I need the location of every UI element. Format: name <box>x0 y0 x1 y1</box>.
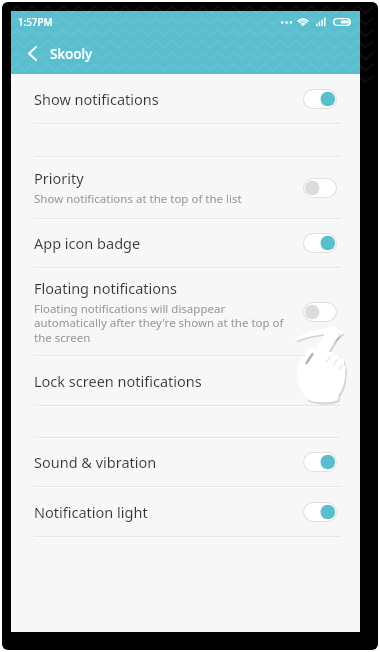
button[interactable]: App icon badge <box>11 219 360 267</box>
staticText: Lock screen notifications <box>34 371 202 391</box>
button[interactable]: Toggle on <box>303 452 337 472</box>
button[interactable]: Lock screen notifications <box>11 356 360 405</box>
staticText: Priority <box>34 168 84 188</box>
staticText: Notification light <box>34 502 148 522</box>
button[interactable]: Back <box>11 33 50 74</box>
staticText: Show notifications <box>34 89 159 109</box>
button[interactable]: Priority <box>11 157 360 218</box>
button[interactable]: Floating notifications <box>11 268 360 355</box>
button[interactable]: Toggle on <box>303 502 337 522</box>
staticText: Show notifications at the top of the lis… <box>34 191 242 207</box>
staticText: App icon badge <box>34 233 141 253</box>
button[interactable]: Notification light <box>11 487 360 536</box>
button[interactable]: Toggle on <box>303 89 337 109</box>
button[interactable]: Sound & vibration <box>11 438 360 486</box>
staticText: 1:57PM <box>18 16 53 29</box>
staticText: Sound & vibration <box>34 452 157 472</box>
button[interactable]: Toggle on <box>303 233 337 253</box>
button[interactable]: Show notifications <box>11 74 360 123</box>
button[interactable]: Toggle off <box>303 302 337 322</box>
staticText: Skooly <box>50 45 93 63</box>
staticText: Floating notifications will disappear au… <box>34 301 291 346</box>
staticText: Floating notifications <box>34 278 177 298</box>
button[interactable]: Toggle off <box>303 178 337 198</box>
